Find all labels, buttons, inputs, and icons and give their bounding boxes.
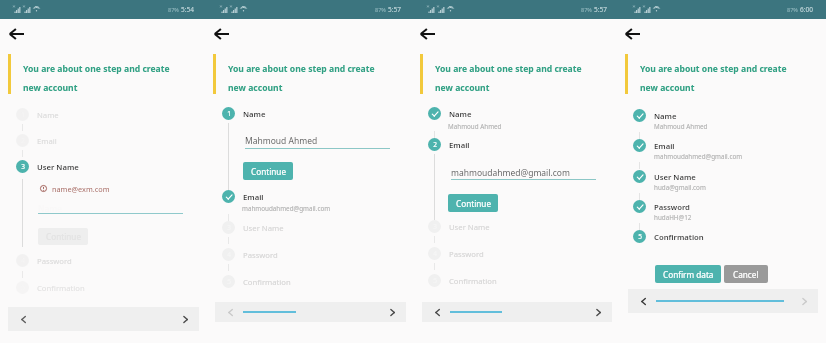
staticText: Email	[654, 141, 675, 151]
staticText: Password	[37, 256, 72, 266]
staticText: Password	[654, 202, 690, 212]
button[interactable]: Next	[383, 303, 401, 321]
button[interactable]: 5	[428, 274, 546, 287]
staticText: 87%	[787, 6, 798, 13]
staticText: 87%	[168, 6, 179, 13]
button[interactable]: Previous	[634, 292, 652, 310]
button[interactable]: Cancel	[724, 265, 768, 283]
button[interactable]: Email	[633, 139, 751, 152]
staticText: mahmoudahmed@gmail.com	[242, 204, 331, 213]
button[interactable]: Back	[621, 23, 643, 45]
staticText: huda@gmail.com	[654, 183, 706, 192]
button[interactable]: Next	[176, 310, 194, 328]
button[interactable]: 5	[222, 275, 340, 288]
staticText: Confirmation	[449, 276, 497, 286]
button[interactable]: 2	[16, 134, 134, 147]
button[interactable]: Name	[428, 107, 546, 120]
staticText: User Name	[37, 162, 79, 172]
staticText: Name	[654, 111, 677, 121]
staticText: Confirmation	[243, 277, 291, 287]
staticText: 5:57	[594, 5, 607, 14]
staticText: You are about one step and create new ac…	[435, 63, 582, 93]
button[interactable]: Previous	[221, 303, 239, 321]
button[interactable]: 2	[428, 138, 546, 151]
staticText: name@exm.com	[52, 184, 110, 194]
button[interactable]: Back	[5, 23, 27, 45]
button[interactable]: User Name	[633, 170, 751, 183]
button[interactable]: Continue	[243, 162, 293, 180]
button[interactable]: Confirm data	[655, 265, 721, 283]
staticText: Name	[37, 110, 59, 120]
staticText: Password	[243, 250, 278, 260]
staticText: 5:57	[388, 5, 401, 14]
button[interactable]: 5	[633, 230, 751, 243]
button[interactable]: 4	[428, 247, 546, 260]
staticText: Name	[38, 203, 62, 215]
button[interactable]: Name	[633, 109, 751, 122]
button[interactable]: Back	[210, 23, 232, 45]
button[interactable]: 5	[16, 281, 134, 294]
button[interactable]: Previous	[428, 303, 446, 321]
staticText: Password	[449, 249, 484, 259]
staticText: Continue	[251, 166, 286, 177]
button[interactable]: 3	[16, 160, 134, 173]
staticText: 87%	[375, 6, 386, 13]
button[interactable]: Previous	[14, 310, 32, 328]
button[interactable]: 1	[222, 107, 340, 120]
button[interactable]: Continue	[448, 194, 498, 212]
staticText: You are about one step and create new ac…	[228, 63, 375, 93]
staticText: Name	[449, 109, 472, 119]
staticText: Email	[37, 136, 57, 146]
button[interactable]: Next	[589, 303, 607, 321]
button[interactable]: 3	[428, 220, 546, 233]
button[interactable]: Email	[222, 190, 340, 203]
staticText: 5	[638, 232, 642, 241]
button[interactable]: 1	[16, 108, 134, 121]
staticText: 6:00	[800, 5, 813, 14]
staticText: Confirm data	[663, 269, 714, 280]
staticText: User Name	[654, 172, 696, 182]
staticText: User Name	[243, 223, 284, 233]
staticText: Mahmoud Ahmed	[654, 122, 708, 131]
staticText: Email	[243, 192, 264, 202]
staticText: 2	[433, 140, 437, 149]
staticText: Mahmoud Ahmed	[448, 122, 502, 131]
staticText: 87%	[581, 6, 592, 13]
staticText: Email	[449, 140, 470, 150]
button[interactable]: Password	[633, 200, 751, 213]
staticText: User Name	[449, 222, 490, 232]
button[interactable]: 4	[222, 248, 340, 261]
button[interactable]: Next	[795, 292, 813, 310]
staticText: Cancel	[733, 269, 759, 280]
button[interactable]: Back	[416, 23, 438, 45]
staticText: Continue	[456, 198, 491, 209]
staticText: 1	[227, 109, 231, 118]
button[interactable]: 4	[16, 254, 134, 267]
staticText: You are about one step and create new ac…	[23, 63, 170, 93]
staticText: Mahmoud Ahmed	[245, 135, 318, 147]
staticText: 5:54	[181, 5, 194, 14]
staticText: Name	[243, 109, 266, 119]
staticText: You are about one step and create new ac…	[640, 63, 787, 93]
staticText: mahmoudahmed@gmail.com	[451, 167, 570, 179]
staticText: Continue	[46, 231, 81, 242]
staticText: mahmoudahmed@gmail.com	[654, 152, 743, 161]
staticText: Confirmation	[37, 283, 85, 293]
staticText: 3	[21, 162, 25, 171]
button[interactable]: 3	[222, 221, 340, 234]
staticText: hudaHH@12	[654, 213, 692, 222]
staticText: Confirmation	[654, 232, 704, 242]
